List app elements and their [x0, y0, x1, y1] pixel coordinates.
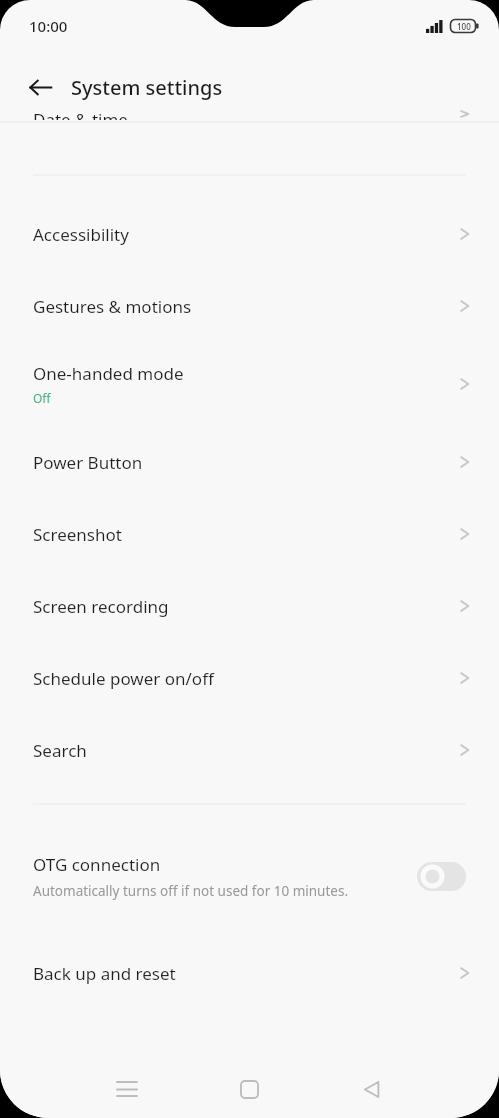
button[interactable]: One-handed mode — [0, 342, 499, 426]
button[interactable]: Date & time — [0, 108, 499, 120]
button[interactable]: Schedule power on/off — [0, 642, 499, 714]
button[interactable]: Search — [0, 714, 499, 786]
button[interactable]: OTG connection toggle, off — [417, 862, 466, 891]
staticText: Off — [33, 390, 51, 406]
staticText: Screen recording — [33, 595, 169, 618]
staticText: 10:00 — [29, 16, 68, 36]
staticText: OTG connection — [33, 853, 161, 876]
button[interactable]: OTG connection — [0, 821, 499, 931]
button[interactable]: Back — [18, 65, 62, 109]
staticText: Date & time — [33, 108, 128, 120]
button[interactable]: Back up and reset — [0, 937, 499, 1009]
staticText: Schedule power on/off — [33, 667, 214, 690]
button[interactable]: Accessibility — [0, 198, 499, 270]
staticText: Back up and reset — [33, 962, 176, 985]
staticText: Screenshot — [33, 523, 122, 546]
staticText: Accessibility — [33, 223, 129, 246]
staticText: Power Button — [33, 451, 143, 474]
staticText: One-handed mode — [33, 362, 184, 385]
button[interactable]: Power Button — [0, 426, 499, 498]
button[interactable]: Screen recording — [0, 570, 499, 642]
button[interactable]: Gestures & motions — [0, 270, 499, 342]
staticText: Gestures & motions — [33, 295, 192, 318]
button[interactable]: Recent apps — [101, 1063, 153, 1115]
staticText: System settings — [71, 74, 223, 101]
staticText: Automatically turns off if not used for … — [33, 882, 349, 900]
staticText: Search — [33, 739, 87, 762]
button[interactable]: Home — [223, 1063, 275, 1115]
button[interactable]: Back — [345, 1063, 397, 1115]
button[interactable]: Screenshot — [0, 498, 499, 570]
staticText: 100 — [457, 21, 471, 32]
